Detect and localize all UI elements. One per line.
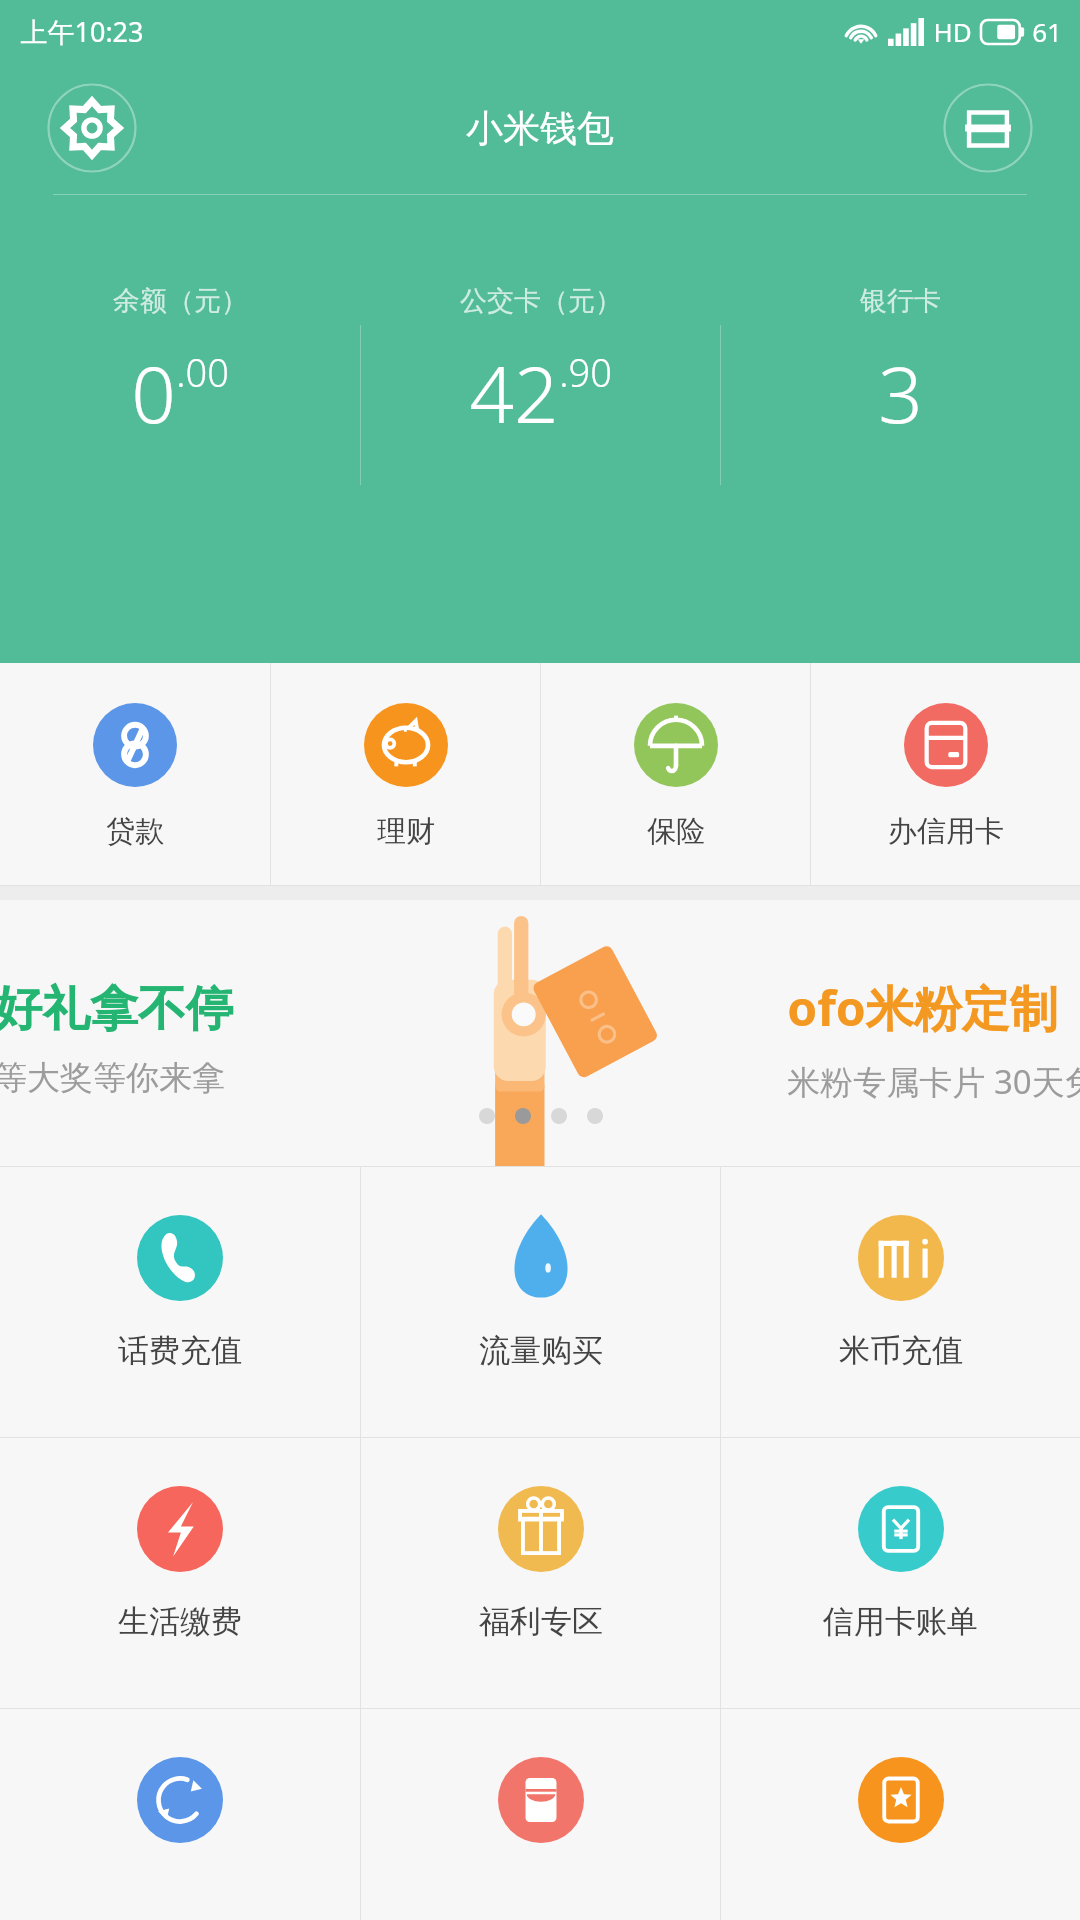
staticText: 3 bbox=[878, 340, 923, 446]
staticText: 米粉专属卡片 30天免 bbox=[787, 1059, 1080, 1104]
staticText: .00 bbox=[176, 346, 229, 398]
staticText: 公交卡（元） bbox=[460, 284, 622, 318]
staticText: 小米钱包 bbox=[466, 105, 614, 152]
staticText: 上午10:23 bbox=[20, 13, 144, 50]
button[interactable]: My cards bbox=[943, 83, 1033, 173]
staticText: 办信用卡 bbox=[888, 813, 1004, 850]
button[interactable]: 理财 bbox=[271, 663, 540, 885]
staticText: HD bbox=[933, 14, 972, 49]
staticText: 42 bbox=[469, 340, 559, 446]
button[interactable]: 好礼拿不停 bbox=[0, 900, 1080, 1166]
button[interactable] bbox=[721, 1709, 1080, 1920]
staticText: 等大奖等你来拿 bbox=[0, 1057, 225, 1099]
staticText: 理财 bbox=[377, 813, 435, 850]
button[interactable]: 话费充值 bbox=[0, 1167, 360, 1437]
button[interactable]: 信用卡账单 bbox=[721, 1438, 1080, 1708]
staticText: 0 bbox=[131, 340, 176, 446]
staticText: 流量购买 bbox=[479, 1331, 603, 1370]
staticText: 米币充值 bbox=[839, 1331, 963, 1370]
staticText: 61 bbox=[1032, 14, 1062, 49]
button[interactable]: 贷款 bbox=[0, 663, 270, 885]
staticText: 好礼拿不停 bbox=[0, 979, 234, 1039]
button[interactable]: 流量购买 bbox=[361, 1167, 720, 1437]
staticText: 信用卡账单 bbox=[823, 1602, 978, 1641]
staticText: ofo米粉定制 bbox=[787, 975, 1058, 1041]
button[interactable]: 余额（元） bbox=[0, 270, 360, 540]
staticText: 生活缴费 bbox=[118, 1602, 242, 1641]
button[interactable] bbox=[361, 1709, 720, 1920]
button[interactable]: 福利专区 bbox=[361, 1438, 720, 1708]
button[interactable] bbox=[0, 1709, 360, 1920]
staticText: 福利专区 bbox=[479, 1602, 603, 1641]
button[interactable]: 保险 bbox=[541, 663, 810, 885]
button[interactable]: 米币充值 bbox=[721, 1167, 1080, 1437]
staticText: 贷款 bbox=[106, 813, 164, 850]
staticText: 保险 bbox=[647, 813, 705, 850]
button[interactable]: 生活缴费 bbox=[0, 1438, 360, 1708]
staticText: 话费充值 bbox=[118, 1331, 242, 1370]
button[interactable]: 公交卡（元） bbox=[361, 270, 720, 540]
button[interactable]: Settings bbox=[47, 83, 137, 173]
button[interactable]: 办信用卡 bbox=[811, 663, 1080, 885]
staticText: 银行卡 bbox=[860, 284, 941, 318]
button[interactable]: 银行卡 bbox=[721, 270, 1080, 540]
staticText: 余额（元） bbox=[113, 284, 248, 318]
staticText: .90 bbox=[559, 346, 612, 398]
